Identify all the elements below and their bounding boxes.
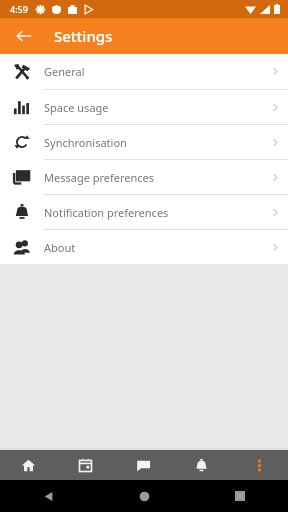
button[interactable]: General	[0, 54, 288, 89]
staticText: About	[44, 240, 262, 255]
button[interactable]: Messages	[114, 450, 172, 480]
button[interactable]: More options	[230, 450, 288, 480]
staticText: Synchronisation	[44, 135, 262, 150]
button[interactable]: Message preferences	[0, 160, 288, 194]
button[interactable]: Calendar	[57, 450, 114, 480]
button[interactable]: Space usage	[0, 90, 288, 124]
button[interactable]: About	[0, 230, 288, 264]
button[interactable]: Synchronisation	[0, 125, 288, 159]
button[interactable]: Back	[10, 22, 38, 50]
staticText: Space usage	[44, 100, 262, 115]
button[interactable]: Notification preferences	[0, 195, 288, 229]
button[interactable]: Notifications	[172, 450, 230, 480]
button[interactable]: Recents	[192, 480, 288, 512]
staticText: Settings	[54, 26, 113, 46]
staticText: Notification preferences	[44, 205, 262, 220]
staticText: 4:59	[10, 3, 28, 15]
button[interactable]: Home	[0, 450, 57, 480]
staticText: Message preferences	[44, 170, 262, 185]
button[interactable]: Back	[0, 480, 96, 512]
button[interactable]: Home	[96, 480, 192, 512]
staticText: General	[44, 64, 262, 79]
